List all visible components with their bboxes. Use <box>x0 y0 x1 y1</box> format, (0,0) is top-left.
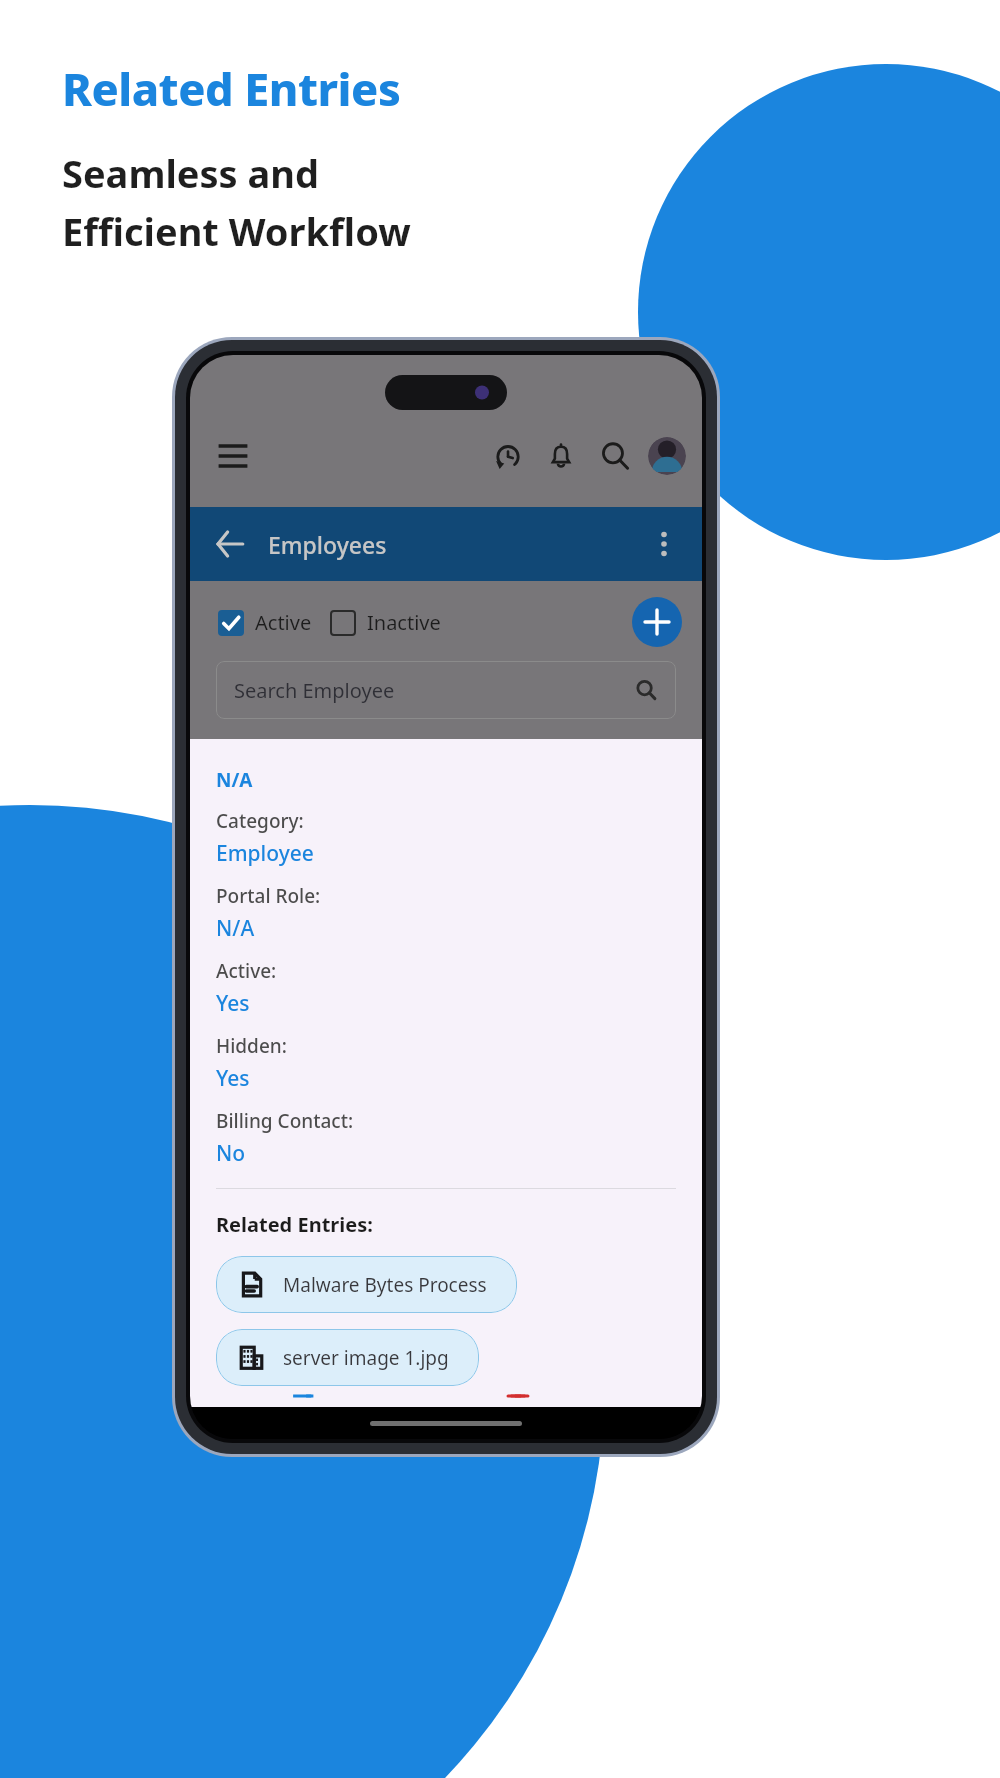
button[interactable]: Add <box>632 597 682 647</box>
button[interactable]: Inactive <box>330 609 441 636</box>
staticText: Hidden: <box>216 1033 287 1059</box>
button[interactable]: Menu <box>212 435 254 477</box>
staticText: N/A <box>216 767 253 793</box>
staticText: Category: <box>216 808 304 834</box>
button[interactable]: Malware Bytes Process <box>216 1256 517 1313</box>
button[interactable]: Notifications <box>544 439 578 473</box>
button[interactable]: Profile <box>648 437 686 475</box>
button[interactable]: Search Employee <box>216 661 676 719</box>
staticText: Related Entries <box>62 58 401 119</box>
staticText: server image 1.jpg <box>283 1345 449 1371</box>
staticText: Malware Bytes Process <box>283 1272 487 1298</box>
button[interactable]: History <box>490 439 524 473</box>
button[interactable]: Active <box>218 609 312 636</box>
staticText: Employee <box>216 839 314 868</box>
staticText: Yes <box>216 989 250 1018</box>
button[interactable]: Back <box>210 524 250 564</box>
staticText: Active <box>255 609 312 636</box>
staticText: No <box>216 1139 246 1168</box>
staticText: Employees <box>268 529 387 560</box>
staticText: Inactive <box>367 609 441 636</box>
button[interactable]: More options <box>646 526 682 562</box>
staticText: Related Entries: <box>216 1211 373 1238</box>
button[interactable]: Search <box>598 439 632 473</box>
button[interactable]: server image 1.jpg <box>216 1329 479 1386</box>
staticText: Yes <box>216 1064 250 1093</box>
staticText: Efficient Workflow <box>62 205 411 257</box>
staticText: Search Employee <box>234 677 395 704</box>
staticText: Active: <box>216 958 277 984</box>
staticText: Portal Role: <box>216 883 321 909</box>
staticText: N/A <box>216 914 255 943</box>
staticText: Billing Contact: <box>216 1108 354 1134</box>
staticText: Seamless and <box>62 147 319 199</box>
